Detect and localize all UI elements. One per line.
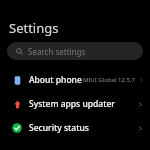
other: System apps updater bbox=[13, 100, 22, 109]
button[interactable]: About phone bbox=[0, 68, 150, 92]
staticText: MIUI Global 12.5.7 bbox=[82, 76, 135, 84]
other: Security status bbox=[12, 123, 22, 133]
button[interactable]: System apps updater bbox=[0, 92, 150, 116]
other: About phone bbox=[13, 76, 22, 85]
staticText: System apps updater bbox=[29, 98, 115, 110]
button[interactable]: Security status bbox=[0, 116, 150, 140]
button[interactable]: Search bbox=[7, 42, 143, 60]
other: Search bbox=[16, 48, 23, 55]
staticText: About phone bbox=[29, 74, 82, 86]
staticText: Settings bbox=[9, 19, 59, 37]
staticText: Search settings bbox=[28, 46, 86, 57]
staticText: Security status bbox=[29, 122, 89, 134]
